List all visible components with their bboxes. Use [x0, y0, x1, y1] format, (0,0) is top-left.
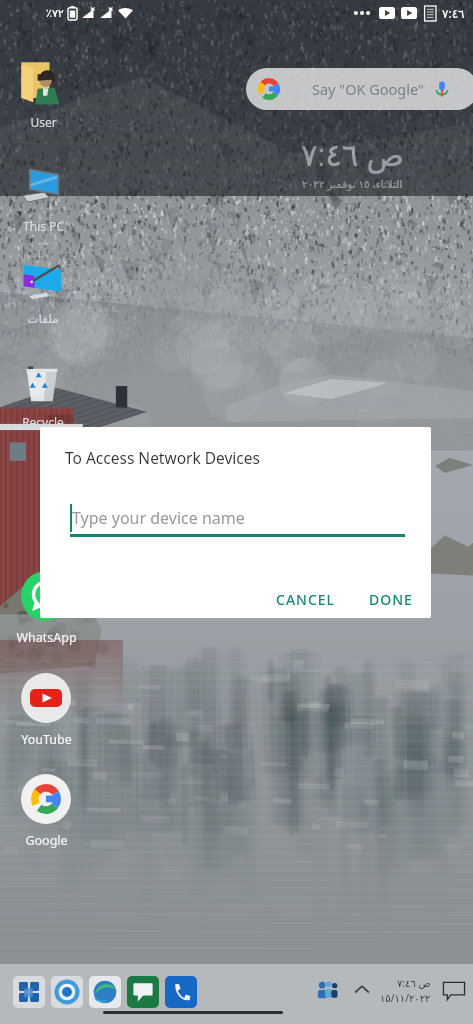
staticText: Google [25, 832, 68, 849]
staticText: Type your device name [72, 507, 245, 529]
staticText: ٪٧٢ [46, 7, 64, 20]
staticText: ملفات [27, 312, 59, 326]
staticText: User [30, 114, 57, 130]
staticText: ص ٧:٤٦ [397, 976, 431, 990]
staticText: WhatsApp [16, 629, 77, 646]
button[interactable]: Notifications [439, 975, 469, 1005]
button[interactable]: ص ٧:٤٦ [380, 976, 431, 1005]
staticText: To Access Network Devices [65, 447, 260, 468]
button[interactable]: Google [3, 774, 89, 849]
button[interactable]: WhatsApp [3, 571, 89, 646]
button[interactable]: Chat [124, 973, 162, 1011]
button[interactable]: YouTube [3, 673, 89, 748]
button[interactable]: This PC [14, 162, 72, 234]
button[interactable]: People [310, 973, 344, 1007]
staticText: ص ٧:٤٦ [301, 133, 405, 175]
button[interactable]: DONE [365, 584, 417, 615]
button[interactable]: Recycle [14, 358, 72, 430]
button[interactable]: Search [48, 973, 86, 1011]
button[interactable]: Edge [86, 973, 124, 1011]
button[interactable]: ملفات [14, 256, 72, 326]
staticText: DONE [369, 590, 413, 609]
button[interactable]: CANCEL [272, 584, 340, 615]
staticText: ٧:٤٦ [442, 5, 465, 21]
staticText: Recycle [22, 414, 64, 430]
staticText: Say "OK Google" [312, 79, 424, 99]
button[interactable]: User [14, 58, 72, 130]
button[interactable]: Say "OK Google" [246, 68, 473, 110]
staticText: CANCEL [276, 590, 336, 609]
staticText: الثلاثاء، ١٥ نوفمبر ٢٠٢٢ [302, 177, 403, 191]
button[interactable]: Start [10, 973, 48, 1011]
button[interactable]: Show hidden icons [348, 976, 376, 1004]
button[interactable]: Phone [162, 973, 200, 1011]
staticText: ١٥/١١/٢٠٢٢ [380, 991, 431, 1005]
staticText: YouTube [21, 731, 72, 748]
staticText: This PC [23, 218, 64, 234]
